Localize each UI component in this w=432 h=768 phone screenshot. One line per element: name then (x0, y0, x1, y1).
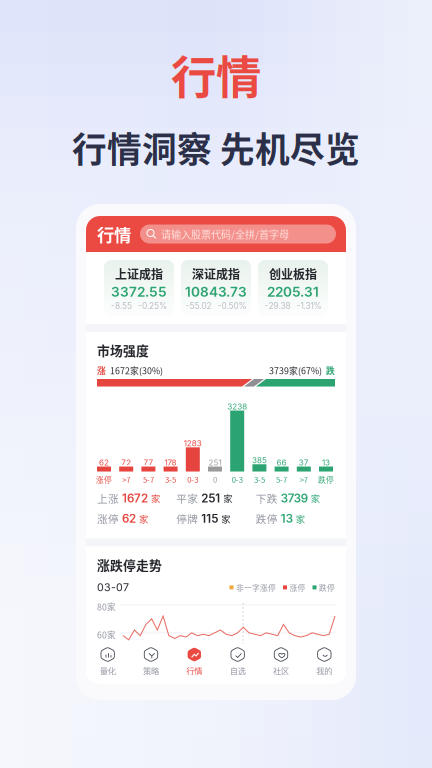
staticText: -0.25% (138, 301, 167, 311)
staticText: 0-3 (187, 474, 198, 485)
staticText: 178 (165, 458, 177, 467)
staticText: 251 (208, 458, 221, 467)
staticText: 策略 (143, 665, 159, 677)
staticText: 66 (277, 458, 287, 467)
button[interactable]: 策略 (129, 644, 173, 680)
staticText: 37 (299, 458, 309, 467)
staticText: 5-7 (143, 474, 154, 485)
staticText: 跌停 (319, 582, 335, 593)
staticText: 家 (151, 491, 160, 505)
staticText: 0 (213, 474, 217, 485)
staticText: -29.38 (264, 301, 290, 311)
staticText: 行情洞察 先机尽览 (72, 122, 360, 172)
staticText: 3372.55 (111, 283, 167, 300)
staticText: 行情 (186, 665, 202, 677)
staticText: 家 (221, 512, 230, 525)
button[interactable]: 社区 (259, 644, 303, 680)
staticText: 13 (281, 512, 293, 526)
staticText: 3739家(67%) (269, 364, 326, 377)
staticText: 社区 (273, 665, 289, 677)
button[interactable]: 上证成指 (104, 260, 174, 316)
staticText: 自选 (230, 665, 246, 677)
staticText: 涨停 (289, 582, 305, 593)
staticText: -1.31% (296, 301, 321, 311)
button[interactable]: 量化 (86, 644, 129, 680)
staticText: 251 (201, 491, 220, 505)
staticText: 涨 (97, 364, 106, 377)
staticText: 385 (252, 455, 267, 465)
staticText: 60家 (97, 628, 116, 641)
staticText: 115 (201, 512, 218, 526)
button[interactable]: 深证成指 (181, 260, 251, 316)
staticText: 03-07 (97, 581, 129, 594)
staticText: 2205.31 (267, 283, 319, 300)
staticText: 平家 (176, 490, 198, 506)
staticText: 5-7 (276, 474, 287, 485)
button[interactable]: 行情 (173, 644, 216, 680)
button[interactable]: 创业板指 (258, 260, 328, 316)
staticText: 创业板指 (269, 265, 317, 282)
staticText: 跌停 (318, 474, 334, 485)
staticText: 10843.73 (185, 283, 247, 300)
staticText: 行情 (171, 42, 261, 107)
staticText: 涨跌停走势 (97, 555, 162, 574)
staticText: >7 (300, 474, 308, 485)
staticText: 深证成指 (192, 265, 240, 282)
staticText: 62 (122, 512, 136, 526)
staticText: 72 (121, 458, 131, 467)
staticText: 下跌 (256, 490, 278, 506)
staticText: 3-5 (165, 474, 176, 485)
staticText: 家 (311, 491, 320, 505)
staticText: 涨停 (97, 511, 119, 526)
staticText: 77 (143, 458, 153, 467)
staticText: 0-3 (232, 474, 243, 485)
staticText: 家 (139, 512, 148, 525)
staticText: 3-5 (254, 474, 265, 485)
staticText: 停牌 (176, 511, 198, 526)
staticText: 市场强度 (97, 341, 149, 359)
staticText: 行情 (97, 221, 131, 247)
staticText: 请输入股票代码/全拼/首字母 (161, 227, 289, 241)
staticText: 13 (322, 458, 330, 467)
staticText: 1672家(30%) (106, 364, 163, 377)
staticText: 家 (296, 512, 305, 525)
button[interactable]: 行情 (97, 221, 131, 247)
staticText: 1283 (184, 438, 202, 448)
staticText: >7 (122, 474, 130, 485)
staticText: 62 (99, 458, 109, 467)
staticText: 跌 (326, 364, 335, 377)
staticText: -8.55 (111, 301, 132, 311)
staticText: 我的 (316, 665, 332, 677)
staticText: -55.02 (185, 301, 211, 311)
staticText: 80家 (97, 600, 116, 613)
staticText: 上涨 (97, 490, 119, 506)
staticText: 上证成指 (115, 265, 163, 282)
staticText: 3739 (281, 491, 308, 505)
staticText: -0.50% (217, 301, 246, 311)
staticText: 3238 (227, 402, 247, 411)
staticText: 涨停 (96, 474, 112, 485)
button[interactable]: 请输入股票代码/全拼/首字母 (140, 224, 336, 243)
staticText: 1672 (122, 491, 148, 505)
button[interactable]: 我的 (303, 644, 346, 680)
button[interactable]: 自选 (216, 644, 259, 680)
staticText: 量化 (100, 665, 116, 677)
staticText: 非一字涨停 (236, 582, 276, 593)
staticText: 家 (223, 491, 232, 505)
staticText: 跌停 (256, 511, 278, 526)
